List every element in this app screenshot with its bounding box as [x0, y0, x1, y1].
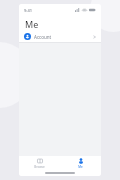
button[interactable]: Me: [60, 156, 101, 170]
staticText: Account: [34, 34, 52, 40]
staticText: Me: [78, 165, 83, 169]
staticText: Browse: [34, 165, 45, 169]
staticText: 9:41: [24, 8, 32, 13]
button[interactable]: Browse: [19, 156, 60, 170]
button[interactable]: Account: [19, 31, 101, 42]
staticText: Me: [25, 18, 39, 30]
